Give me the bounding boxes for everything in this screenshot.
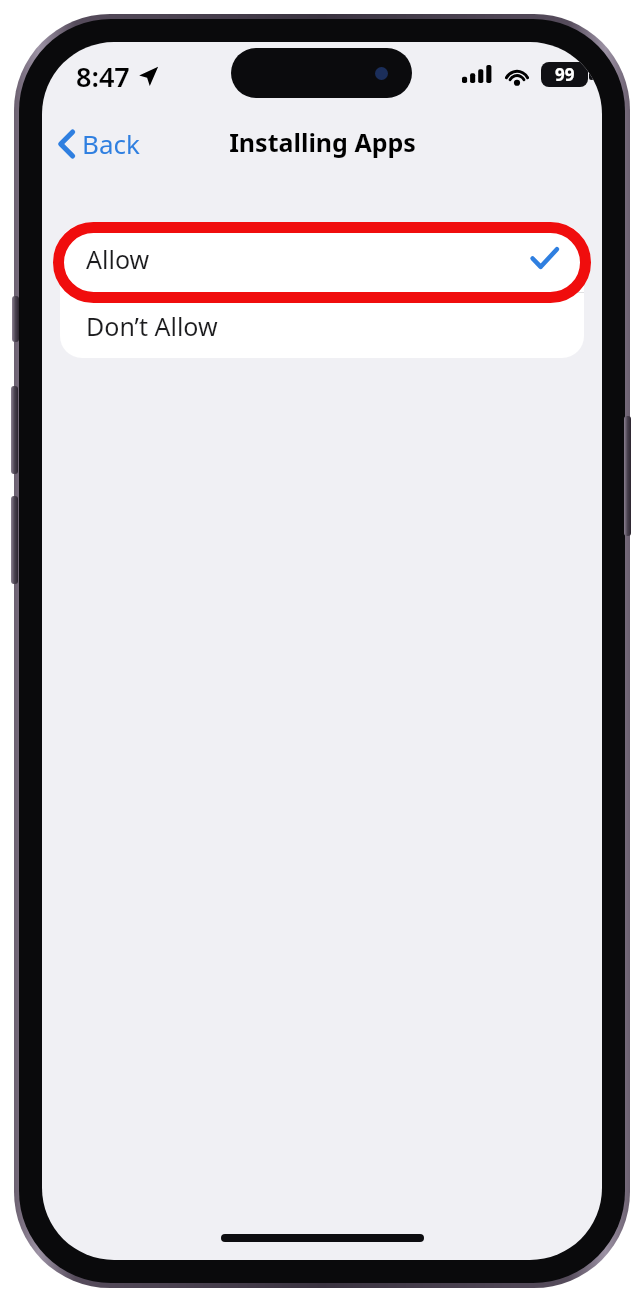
- button[interactable]: Back: [50, 120, 148, 167]
- button[interactable]: Allow: [60, 225, 584, 292]
- button[interactable]: Don’t Allow: [60, 293, 584, 358]
- staticText: Allow: [86, 242, 150, 276]
- staticText: Back: [82, 126, 140, 161]
- staticText: Installing Apps: [229, 125, 416, 159]
- staticText: 99: [555, 63, 575, 86]
- staticText: Don’t Allow: [86, 309, 218, 343]
- staticText: 8:47: [76, 58, 130, 95]
